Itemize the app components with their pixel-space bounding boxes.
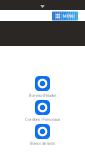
staticText: Cordons / Faisceaux [25,116,60,122]
staticText: MENU [62,13,74,19]
staticText: Bureau d'études [28,92,56,98]
button[interactable]: MENU [52,11,78,20]
button[interactable]: Bureau d'études [0,76,85,98]
button[interactable]: Cordons / Faisceaux [0,100,85,122]
staticText: Bancs de tests [30,140,55,146]
button[interactable]: Bancs de tests [0,124,85,146]
